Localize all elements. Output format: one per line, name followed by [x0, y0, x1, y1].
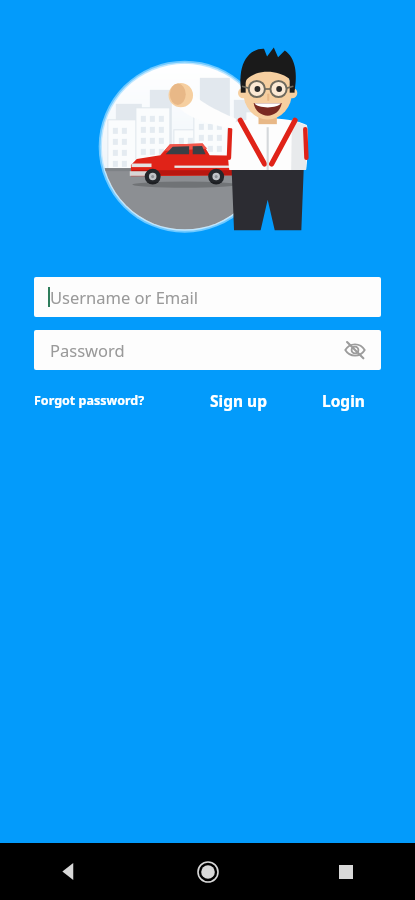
- button[interactable]: Recent apps: [277, 843, 415, 900]
- button[interactable]: Forgot password?: [34, 392, 145, 409]
- button[interactable]: Password: [34, 330, 381, 370]
- button[interactable]: Back: [0, 843, 139, 900]
- staticText: Forgot password?: [34, 392, 145, 409]
- button[interactable]: Login: [322, 390, 365, 411]
- button[interactable]: Username or Email: [34, 277, 381, 317]
- button[interactable]: Show password: [337, 332, 373, 368]
- staticText: Sign up: [210, 390, 267, 411]
- staticText: Login: [322, 390, 365, 411]
- button[interactable]: Sign up: [210, 390, 267, 411]
- staticText: Username or Email: [50, 286, 199, 308]
- staticText: Password: [50, 339, 125, 361]
- button[interactable]: Home: [139, 843, 277, 900]
